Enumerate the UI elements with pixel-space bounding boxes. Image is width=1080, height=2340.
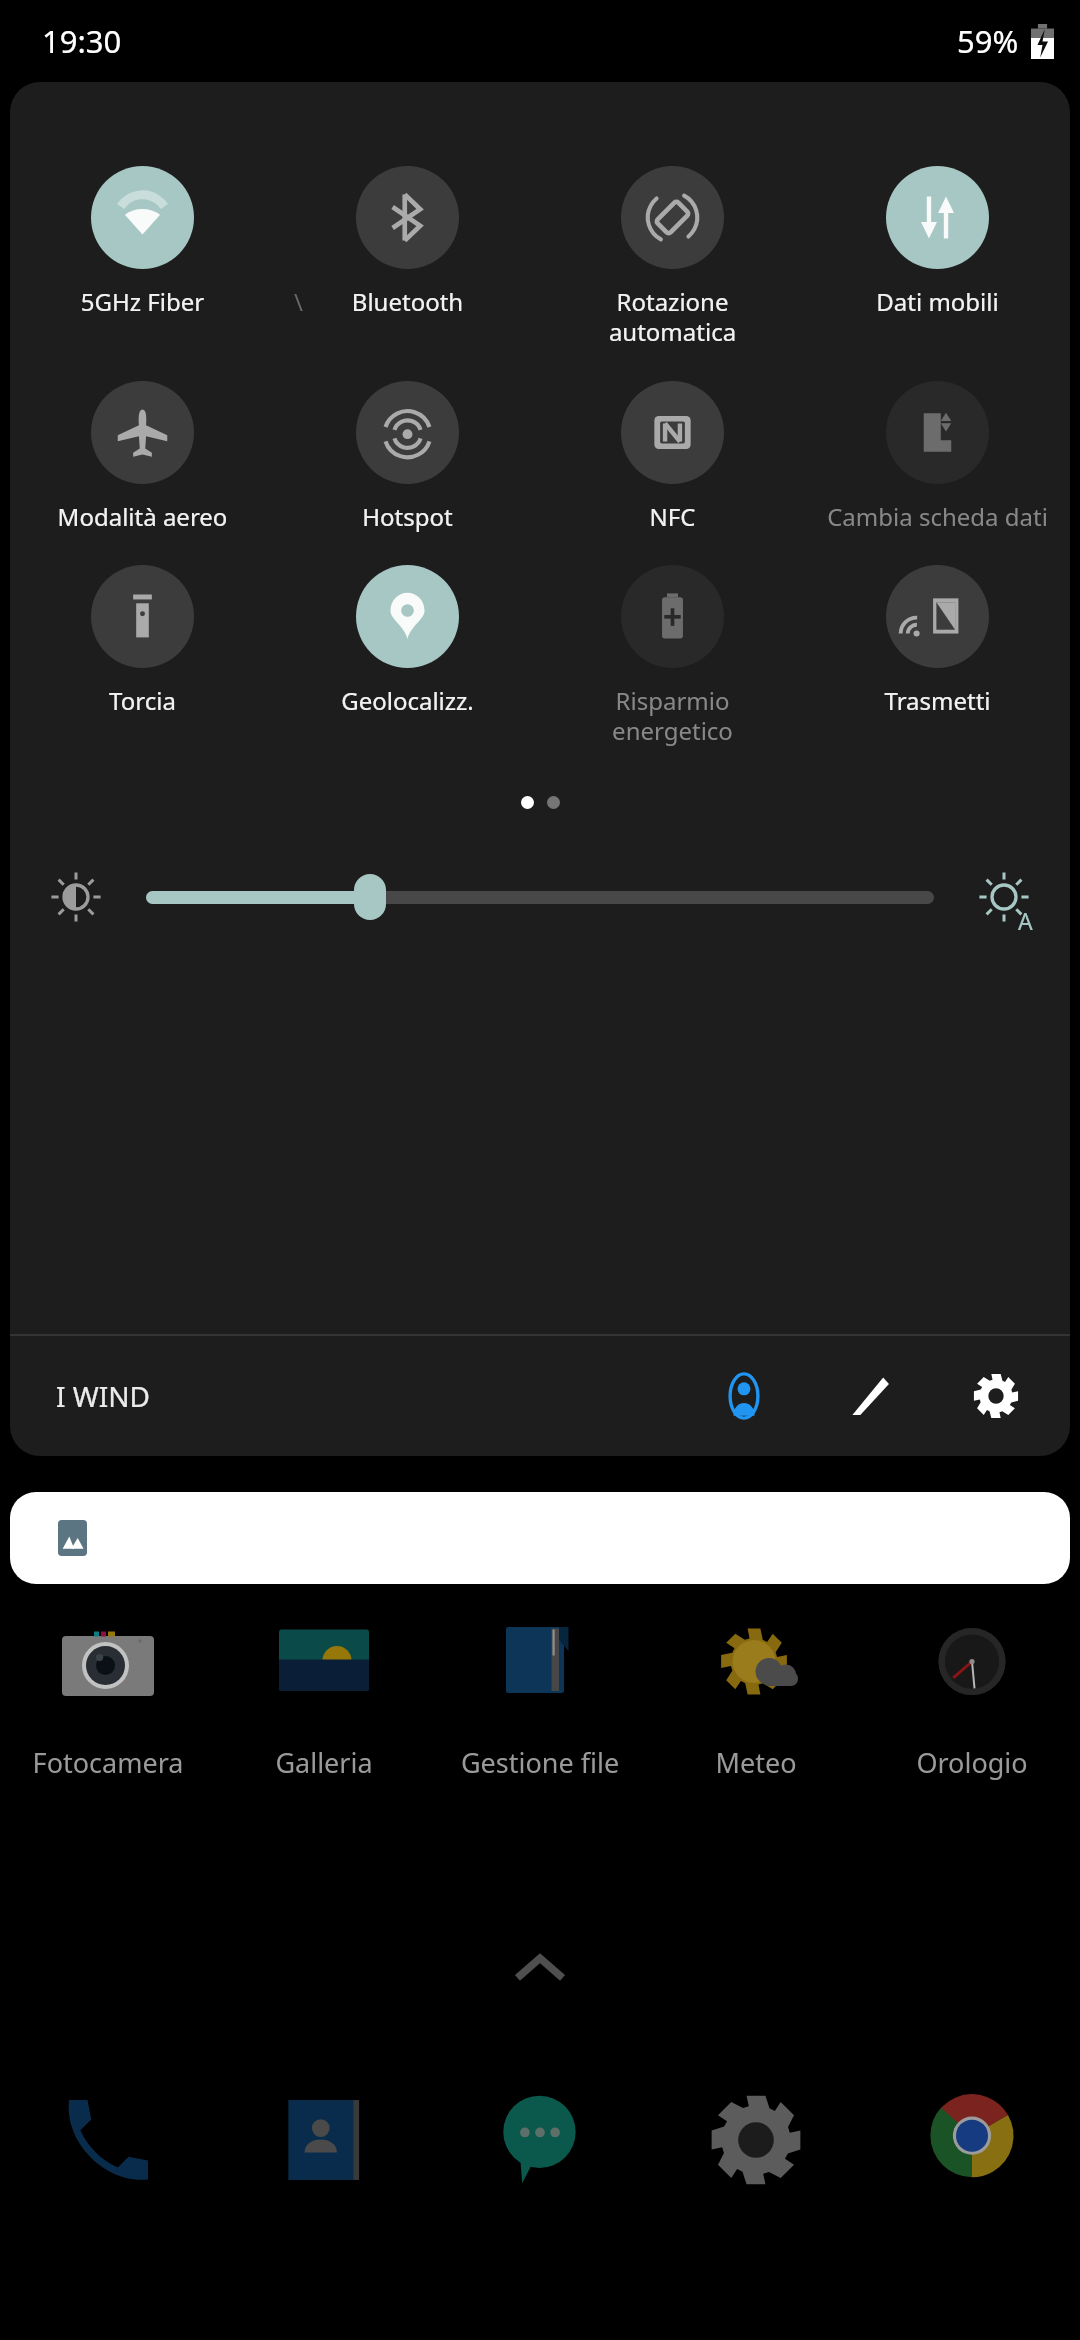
button[interactable]: Chrome <box>864 2060 1080 2220</box>
staticText: Meteo <box>648 1744 864 1781</box>
staticText: Hotspot <box>275 500 540 533</box>
staticText: Dati mobili <box>805 285 1070 318</box>
button[interactable]: User profile <box>702 1354 786 1438</box>
button[interactable]: Open app drawer <box>490 1918 590 2018</box>
button[interactable]: Galleria <box>216 1620 432 1781</box>
button[interactable]: Settings <box>648 2060 864 2220</box>
button[interactable]: Settings <box>954 1354 1038 1438</box>
button[interactable]: Phone <box>0 2060 216 2220</box>
staticText: Modalità aereo <box>10 500 275 533</box>
button[interactable]: Risparmio energetico <box>540 565 805 748</box>
button[interactable]: Contacts <box>216 2060 432 2220</box>
button[interactable]: Geolocalizz. <box>275 565 540 717</box>
staticText: Gestione file <box>432 1744 648 1781</box>
staticText: \ <box>294 285 303 318</box>
button[interactable]: Modalità aereo <box>10 381 275 533</box>
staticText: 19:30 <box>42 20 122 62</box>
staticText: Trasmetti <box>805 684 1070 717</box>
button[interactable]: Edit tiles <box>828 1354 912 1438</box>
button[interactable]: Trasmetti <box>805 565 1070 717</box>
button[interactable]: Orologio <box>864 1620 1080 1781</box>
button[interactable]: Hotspot <box>275 381 540 533</box>
staticText: Risparmio energetico <box>540 684 805 748</box>
button[interactable]: 5GHz Fiber <box>10 166 275 318</box>
button[interactable]: Bluetooth <box>275 166 540 318</box>
staticText: Orologio <box>864 1744 1080 1781</box>
staticText: Rotazione automatica <box>540 285 805 349</box>
button[interactable]: Meteo <box>648 1620 864 1781</box>
staticText: 5GHz Fiber <box>10 285 275 318</box>
staticText: Torcia <box>10 684 275 717</box>
button[interactable]: Fotocamera <box>0 1620 216 1781</box>
staticText: Cambia scheda dati <box>805 500 1070 533</box>
button[interactable]: Messages <box>432 2060 648 2220</box>
staticText: A <box>1018 905 1033 936</box>
button[interactable]: Torcia <box>10 565 275 717</box>
button[interactable] <box>10 1492 1070 1584</box>
staticText: Galleria <box>216 1744 432 1781</box>
staticText: Bluetooth <box>275 285 540 318</box>
staticText: Geolocalizz. <box>275 684 540 717</box>
button[interactable]: Rotazione automatica <box>540 166 805 349</box>
staticText: NFC <box>540 500 805 533</box>
staticText: I WIND <box>56 1377 151 1415</box>
button[interactable]: Gestione file <box>432 1620 648 1781</box>
button[interactable]: NFC <box>540 381 805 533</box>
staticText: Fotocamera <box>0 1744 216 1781</box>
button[interactable]: Dati mobili <box>805 166 1070 318</box>
button[interactable]: Cambia scheda dati <box>805 381 1070 533</box>
staticText: 59% <box>957 20 1019 62</box>
